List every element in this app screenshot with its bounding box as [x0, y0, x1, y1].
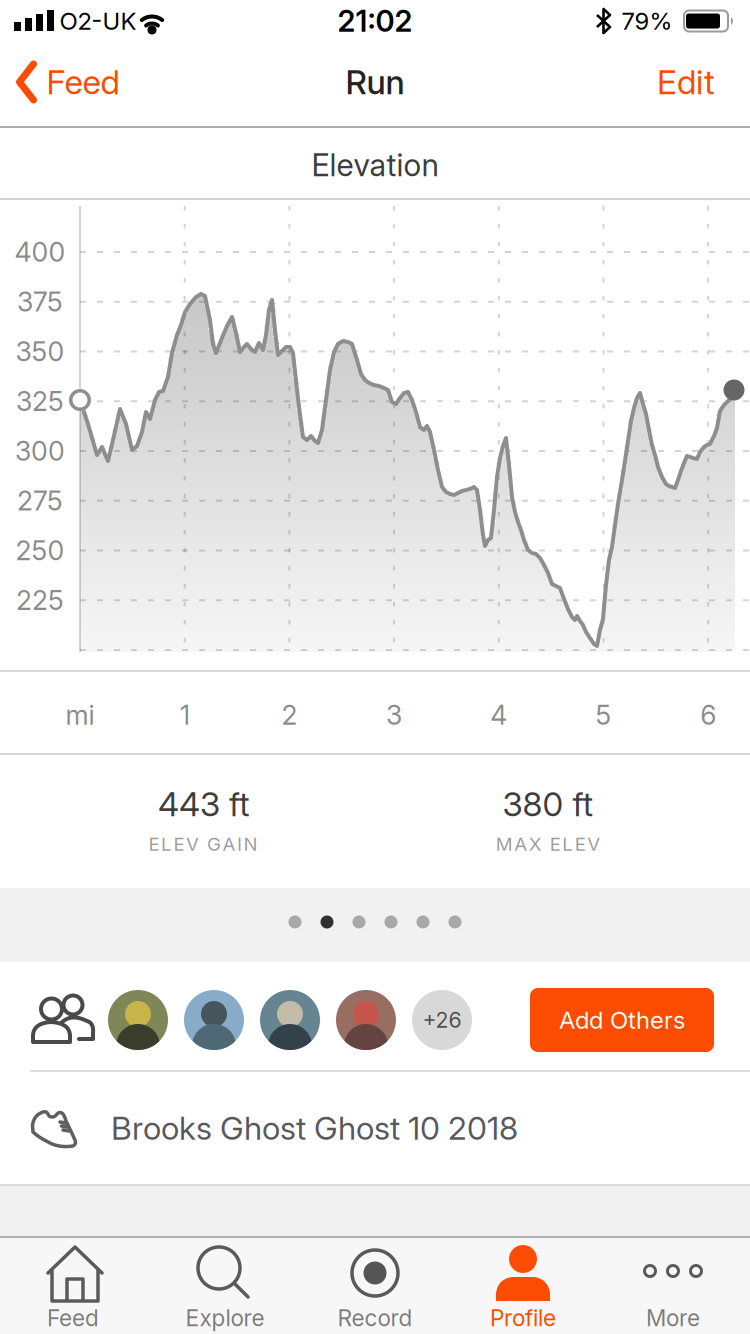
staticText: 400	[14, 236, 65, 268]
staticText: Run	[345, 62, 404, 102]
staticText: Profile	[490, 1305, 556, 1331]
staticText: Explore	[185, 1305, 264, 1331]
button[interactable]: Brooks Ghost Ghost 10 2018	[0, 1072, 750, 1184]
staticText: 21:02	[337, 4, 412, 38]
button[interactable]: Edit	[657, 62, 715, 102]
button[interactable]: More	[598, 1236, 748, 1334]
staticText: ELEV GAIN	[148, 833, 257, 855]
button[interactable]: Athlete	[184, 990, 244, 1050]
button[interactable]: Feed	[0, 1236, 150, 1334]
staticText: mi	[65, 699, 94, 731]
staticText: Feed	[46, 62, 119, 102]
button[interactable]: Add Others	[530, 988, 714, 1052]
staticText: 79%	[621, 7, 672, 35]
staticText: Add Others	[559, 1006, 685, 1034]
staticText: Edit	[657, 62, 715, 102]
staticText: O2-UK	[59, 7, 136, 35]
staticText: Feed	[47, 1305, 99, 1331]
button[interactable]: Athlete	[260, 990, 320, 1050]
button[interactable]: Explore	[150, 1236, 300, 1334]
staticText: More	[646, 1305, 700, 1331]
staticText: Elevation	[311, 147, 438, 183]
staticText: 380 ft	[502, 784, 593, 824]
button[interactable]: Profile	[448, 1236, 598, 1334]
staticText: 250	[15, 535, 64, 566]
staticText: 300	[15, 435, 65, 467]
staticText: 443 ft	[158, 784, 250, 824]
staticText: 1	[180, 699, 190, 731]
button[interactable]: Feed	[16, 62, 119, 102]
button[interactable]: Record	[300, 1236, 450, 1334]
staticText: 275	[17, 485, 63, 516]
staticText: 325	[16, 385, 64, 417]
staticText: +26	[422, 1007, 461, 1033]
button[interactable]: Athlete	[336, 990, 396, 1050]
staticText: 5	[595, 699, 611, 731]
staticText: 4	[490, 699, 507, 731]
staticText: 3	[386, 699, 402, 731]
staticText: MAX ELEV	[496, 833, 600, 855]
staticText: Record	[337, 1305, 412, 1331]
staticText: 225	[16, 584, 64, 616]
staticText: 6	[700, 699, 716, 731]
staticText: 375	[17, 286, 63, 317]
button[interactable]: Athlete	[108, 990, 168, 1050]
staticText: 350	[15, 336, 64, 367]
staticText: 2	[281, 699, 297, 731]
staticText: Brooks Ghost Ghost 10 2018	[111, 1109, 518, 1147]
